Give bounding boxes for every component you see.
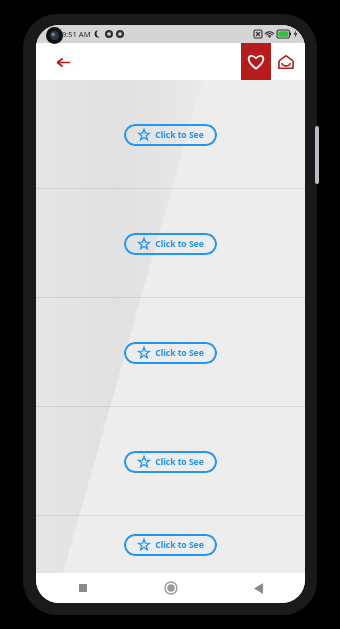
staticText: Click to See <box>155 129 204 141</box>
staticText: Click to See <box>155 539 204 551</box>
button[interactable]: Back <box>50 49 76 75</box>
button[interactable]: Recents <box>70 575 96 601</box>
button[interactable]: Click to See <box>124 233 217 255</box>
button[interactable]: Click to See <box>124 124 217 146</box>
button[interactable]: Back <box>245 575 271 601</box>
button[interactable]: Home <box>158 575 184 601</box>
staticText: 9:51 AM <box>62 29 91 39</box>
staticText: Click to See <box>155 347 204 359</box>
staticText: Click to See <box>155 238 204 250</box>
button[interactable]: Click to See <box>124 534 217 556</box>
staticText: Click to See <box>155 456 204 468</box>
button[interactable]: Click to See <box>124 451 217 473</box>
button[interactable]: Click to See <box>124 342 217 364</box>
button[interactable]: Messages <box>271 43 301 80</box>
button[interactable]: Favorites <box>241 43 271 80</box>
